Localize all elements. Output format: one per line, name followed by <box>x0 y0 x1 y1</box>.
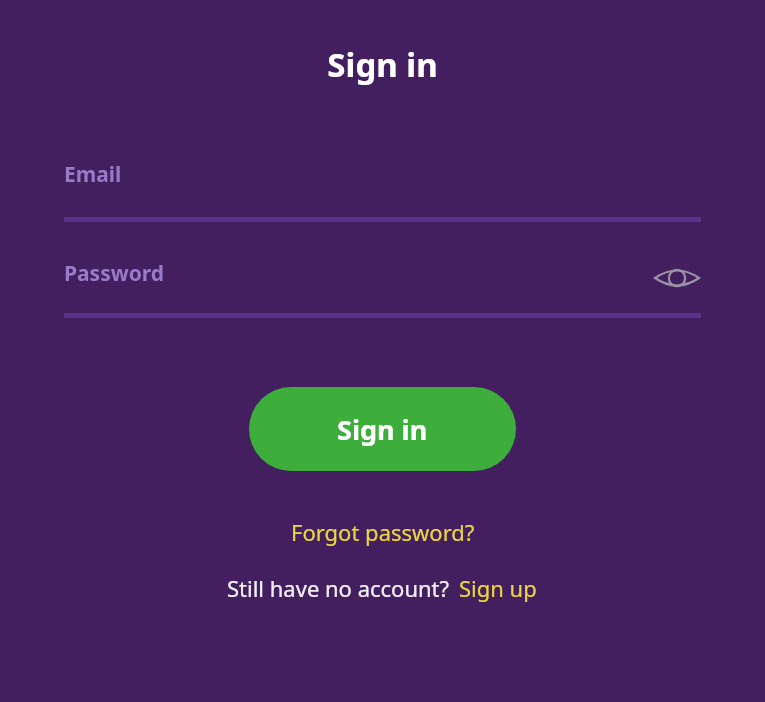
button[interactable]: Sign in <box>249 387 516 471</box>
button[interactable]: Forgot password? <box>285 515 481 549</box>
staticText: Sign in <box>0 42 765 87</box>
staticText: Forgot password? <box>291 517 475 547</box>
staticText: Email <box>64 160 122 189</box>
staticText: Sign up <box>459 573 537 603</box>
button[interactable]: Show password <box>653 261 701 295</box>
staticText: Still have no account? <box>227 573 450 603</box>
staticText: Password <box>64 259 165 288</box>
staticText: Sign in <box>337 411 428 448</box>
button[interactable]: Password <box>64 259 165 288</box>
button[interactable]: Sign up <box>457 571 539 605</box>
button[interactable]: Email <box>64 160 701 222</box>
